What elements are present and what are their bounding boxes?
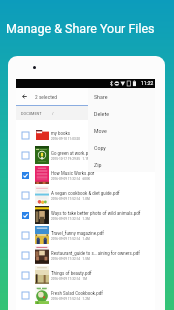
staticText: Fresh Salad Cookbook.pdf xyxy=(51,290,103,296)
staticText: Move xyxy=(94,127,107,134)
button[interactable]: Fresh Salad Cookbook.pdf xyxy=(16,285,155,305)
button[interactable]: Travel_funny magazine.pdf xyxy=(16,225,155,245)
button[interactable]: Share xyxy=(88,88,155,105)
staticText: 2016-09-09 17:32:14 600K xyxy=(51,177,90,181)
staticText: 11:22 xyxy=(141,80,154,87)
button[interactable]: Things of beauty.pdf xyxy=(16,265,155,285)
staticText: Zip xyxy=(94,161,102,168)
staticText: 2016-09-09 17:32:14 1.5M xyxy=(51,257,90,261)
staticText: my books xyxy=(51,130,71,136)
staticText: Go green at work.pdf xyxy=(51,150,93,156)
staticText: 2015-10-17 19:29:35 1.1M xyxy=(51,157,90,161)
staticText: Copy xyxy=(94,144,106,151)
staticText: Manage & Share Your Files xyxy=(6,21,155,36)
staticText: Things of beauty.pdf xyxy=(51,270,92,276)
staticText: Ways to take better photo of wild animal… xyxy=(51,210,141,216)
button[interactable]: Zip xyxy=(88,156,155,172)
button[interactable]: A vegan cookbook & diet guide.pdf xyxy=(16,185,155,205)
staticText: 2016-09-09 17:52:14 1.4M xyxy=(51,237,90,241)
staticText: A vegan cookbook & diet guide.pdf xyxy=(51,190,120,196)
staticText: 2016-09-09 17:52:14 1.2M xyxy=(51,297,90,301)
staticText: / xyxy=(52,111,54,116)
staticText: Delete xyxy=(94,110,110,117)
staticText: 2016-09-09 17:32:14 1.3M xyxy=(51,217,90,221)
staticText: 2016-09-09 17:52:14 1.0M xyxy=(51,197,90,201)
button[interactable]: How Music Works.pdf xyxy=(16,165,155,185)
staticText: Travel_funny magazine.pdf xyxy=(51,230,104,236)
staticText: 2 selected xyxy=(35,94,57,100)
button[interactable]: Copy xyxy=(88,139,155,156)
staticText: Restaurant_guide to s...aining for owner… xyxy=(51,250,140,256)
staticText: Share xyxy=(94,93,108,100)
button[interactable]: Ways to take better photo of wild animal… xyxy=(16,205,155,225)
staticText: 2016-09-10 11:03:20 xyxy=(51,137,81,141)
button[interactable]: Back xyxy=(16,88,32,105)
button[interactable]: Restaurant_guide to s...aining for owner… xyxy=(16,245,155,265)
button[interactable]: Go green at work.pdf xyxy=(16,145,155,165)
button[interactable]: Move xyxy=(88,122,155,139)
button[interactable]: my books xyxy=(16,125,155,145)
button[interactable]: DOCUMENT xyxy=(21,111,42,116)
staticText: 2016-09-09 17:32:14 1M xyxy=(51,277,88,281)
button[interactable]: Delete xyxy=(88,105,155,122)
staticText: How Music Works.pdf xyxy=(51,170,95,176)
